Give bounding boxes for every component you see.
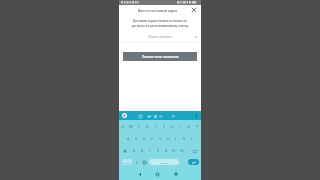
button[interactable]: Home xyxy=(153,170,161,178)
button[interactable]: F xyxy=(148,133,156,144)
button[interactable]: H xyxy=(164,133,172,144)
staticText: ?123 xyxy=(124,161,130,164)
staticText: D xyxy=(143,136,146,141)
button[interactable]: K xyxy=(180,133,188,144)
staticText: Q xyxy=(121,124,125,129)
staticText: E xyxy=(138,124,141,129)
staticText: K xyxy=(183,136,186,141)
button[interactable]: J xyxy=(172,133,180,144)
button[interactable]: M xyxy=(178,145,186,156)
staticText: P xyxy=(196,124,199,129)
staticText: T xyxy=(155,124,158,129)
button[interactable]: Google assistant xyxy=(122,113,127,118)
staticText: J xyxy=(175,136,177,141)
button[interactable]: Clipboard xyxy=(152,113,158,119)
button[interactable]: GIF xyxy=(146,113,152,119)
staticText: M xyxy=(180,148,184,153)
button[interactable]: R xyxy=(143,121,151,132)
button[interactable]: Recent apps xyxy=(172,170,180,178)
button[interactable]: Comma xyxy=(134,159,140,165)
staticText: R xyxy=(146,124,149,129)
staticText: Y xyxy=(163,124,166,129)
staticText: V xyxy=(157,148,160,153)
button[interactable]: S xyxy=(132,133,140,144)
staticText: Ввести почтовый адрес xyxy=(138,8,178,13)
button[interactable]: Backspace xyxy=(190,147,198,155)
button[interactable]: Back xyxy=(136,170,144,178)
staticText: H xyxy=(167,136,170,141)
staticText: Z xyxy=(133,148,136,153)
staticText: G xyxy=(159,136,162,141)
staticText: L xyxy=(191,136,194,141)
button[interactable]: L xyxy=(188,133,196,144)
staticText: C xyxy=(149,148,152,153)
button[interactable]: I xyxy=(176,121,184,132)
button[interactable]: Close xyxy=(190,6,198,14)
staticText: F xyxy=(151,136,154,141)
button[interactable]: English xyxy=(149,159,179,165)
button[interactable]: X xyxy=(138,145,146,156)
button[interactable]: N xyxy=(170,145,178,156)
staticText: N xyxy=(172,148,176,153)
button[interactable]: More options xyxy=(193,113,199,119)
button[interactable]: G xyxy=(156,133,164,144)
button[interactable]: Stickers xyxy=(137,113,143,119)
staticText: X xyxy=(141,148,144,153)
button[interactable]: Emoji xyxy=(141,159,147,165)
button[interactable]: E xyxy=(135,121,143,132)
staticText: U xyxy=(171,124,174,129)
button[interactable]: D xyxy=(140,133,148,144)
button[interactable]: Shift xyxy=(121,147,129,155)
button[interactable]: U xyxy=(168,121,176,132)
button[interactable]: A xyxy=(124,133,132,144)
button[interactable]: O xyxy=(185,121,193,132)
button[interactable]: Translate xyxy=(158,113,164,119)
staticText: O xyxy=(187,124,191,129)
button[interactable]: Показать точки самовывоза xyxy=(123,52,197,61)
button[interactable]: Y xyxy=(160,121,168,132)
button[interactable]: C xyxy=(146,145,154,156)
staticText: Показать точки самовывоза xyxy=(142,55,179,58)
button[interactable]: B xyxy=(162,145,170,156)
staticText: English xyxy=(160,161,169,164)
button[interactable]: W xyxy=(127,121,135,132)
button[interactable]: P xyxy=(193,121,201,132)
button[interactable]: Search xyxy=(170,113,176,119)
staticText: Область доставки xyxy=(148,35,172,39)
button[interactable]: V xyxy=(154,145,162,156)
button[interactable]: T xyxy=(152,121,160,132)
staticText: A xyxy=(127,136,130,141)
staticText: Доставка осуществляется только на регион… xyxy=(119,19,201,28)
staticText: W xyxy=(129,124,133,129)
staticText: B xyxy=(165,148,168,153)
staticText: I xyxy=(179,124,181,129)
button[interactable]: Область доставки xyxy=(122,32,198,41)
button[interactable]: Q xyxy=(119,121,127,132)
staticText: S xyxy=(135,136,138,141)
button[interactable]: Enter xyxy=(188,159,199,165)
button[interactable]: Z xyxy=(130,145,138,156)
button[interactable]: ?123 xyxy=(122,159,132,165)
